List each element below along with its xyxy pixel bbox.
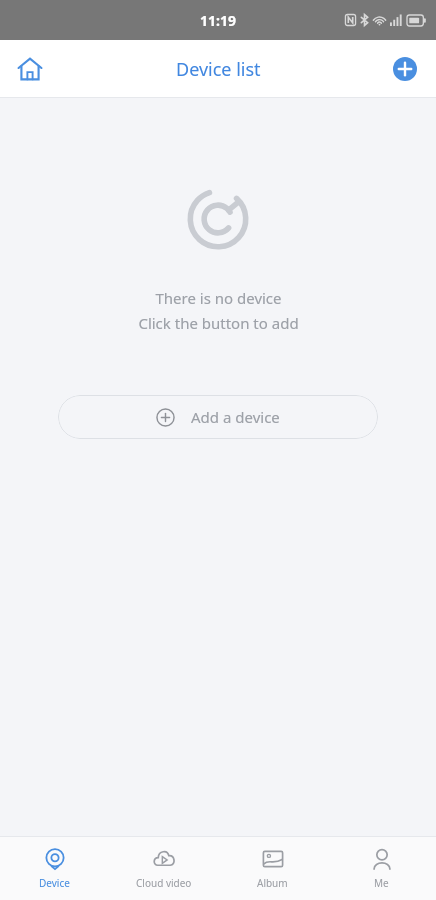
button[interactable]: Album: [218, 837, 327, 900]
staticText: Device list: [176, 57, 261, 82]
staticText: Click the button to add: [138, 313, 299, 333]
button[interactable]: Cloud video: [109, 837, 218, 900]
staticText: Me: [374, 876, 389, 890]
staticText: Device: [39, 876, 70, 890]
button[interactable]: Home: [8, 47, 52, 91]
button[interactable]: Add a device: [58, 395, 378, 439]
staticText: Add a device: [191, 407, 280, 427]
staticText: 11:19: [200, 11, 236, 30]
button[interactable]: Add device: [384, 48, 426, 90]
button[interactable]: Device: [0, 837, 109, 900]
button[interactable]: Me: [327, 837, 436, 900]
staticText: Cloud video: [136, 876, 192, 890]
staticText: Album: [257, 876, 288, 890]
staticText: There is no device: [155, 288, 282, 308]
